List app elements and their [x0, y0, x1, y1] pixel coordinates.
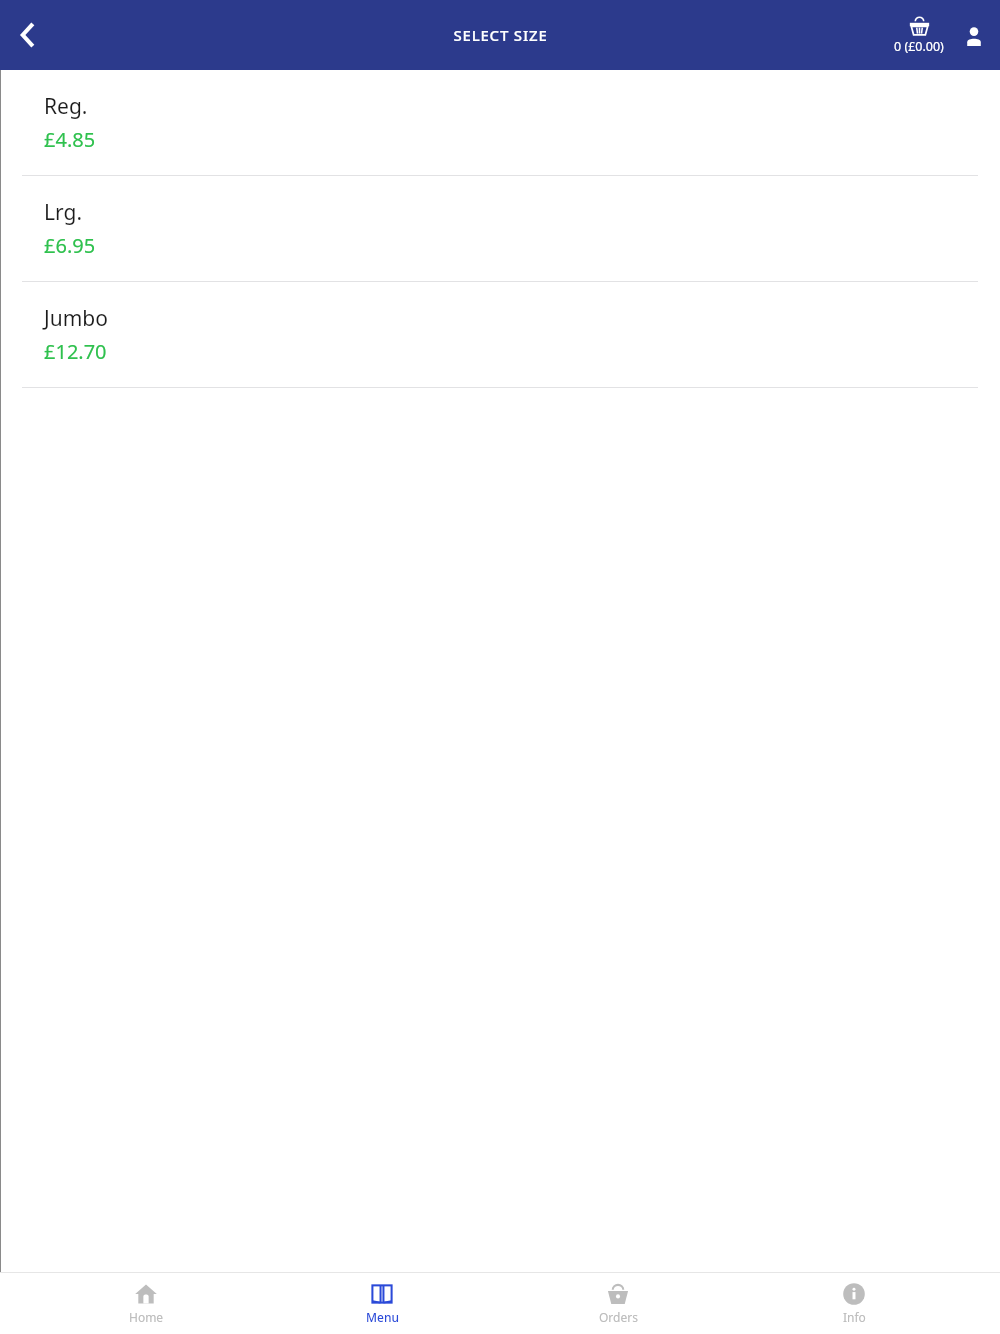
button[interactable]: Lrg.	[0, 176, 1000, 282]
staticText: Orders	[599, 1309, 638, 1325]
button[interactable]: Info	[764, 1276, 944, 1331]
staticText: Home	[129, 1309, 164, 1325]
staticText: Menu	[366, 1309, 399, 1325]
staticText: £6.95	[44, 232, 96, 259]
button[interactable]: Account	[954, 16, 994, 56]
button[interactable]: Back	[0, 7, 56, 63]
staticText: £12.70	[44, 338, 107, 365]
button[interactable]: Jumbo	[0, 282, 1000, 388]
button[interactable]: Home	[56, 1276, 236, 1331]
staticText: £4.85	[44, 126, 96, 153]
button[interactable]: Menu	[292, 1276, 472, 1331]
staticText: Info	[843, 1309, 866, 1325]
staticText: Jumbo	[44, 304, 108, 333]
staticText: Reg.	[44, 92, 88, 121]
staticText: SELECT SIZE	[453, 25, 548, 45]
button[interactable]: Orders	[528, 1276, 708, 1331]
button[interactable]: Basket	[888, 12, 950, 59]
button[interactable]: Reg.	[0, 70, 1000, 176]
staticText: Lrg.	[44, 198, 83, 227]
staticText: 0 (£0.00)	[894, 38, 944, 55]
